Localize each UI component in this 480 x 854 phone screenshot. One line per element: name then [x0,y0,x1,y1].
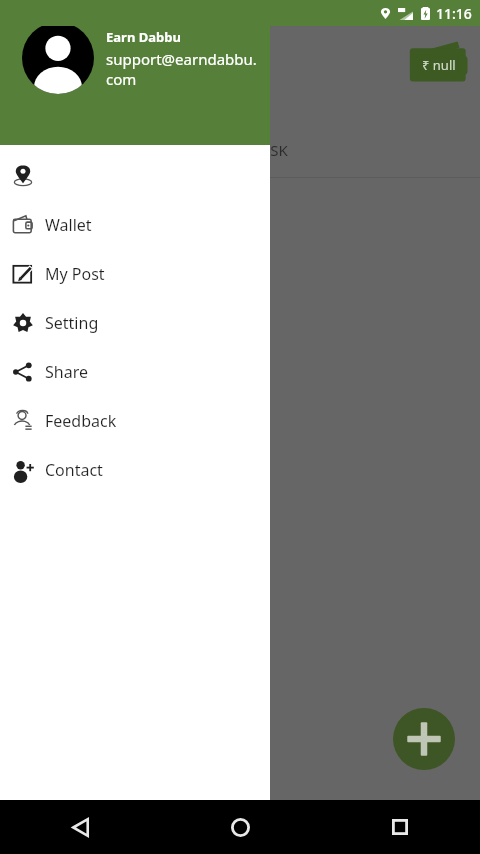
button[interactable]: TASK [253,140,288,160]
staticText: Setting [45,312,99,334]
staticText: Share [45,361,88,383]
button[interactable]: Profile picture [22,22,94,94]
staticText: 11:16 [436,4,472,23]
button[interactable]: Location [0,151,270,200]
staticText: Feedback [45,410,117,432]
button[interactable]: Back [60,807,100,847]
button[interactable]: Wallet [0,200,270,249]
staticText: My Post [45,263,105,285]
button[interactable]: Share [0,347,270,396]
button[interactable]: Feedback [0,396,270,445]
button[interactable]: My Post [0,249,270,298]
staticText: Wallet [45,214,92,236]
staticText: Contact [45,459,103,481]
button[interactable]: Wallet balance [408,40,470,86]
button[interactable]: Contact [0,445,270,494]
staticText: ₹ null [422,56,456,74]
staticText: Earn Dabbu [106,28,181,46]
button[interactable]: Setting [0,298,270,347]
button[interactable]: Add [393,708,455,770]
button[interactable]: Recent apps [380,807,420,847]
button[interactable]: Home [220,807,260,847]
staticText: support@earndabbu.com [106,49,258,89]
